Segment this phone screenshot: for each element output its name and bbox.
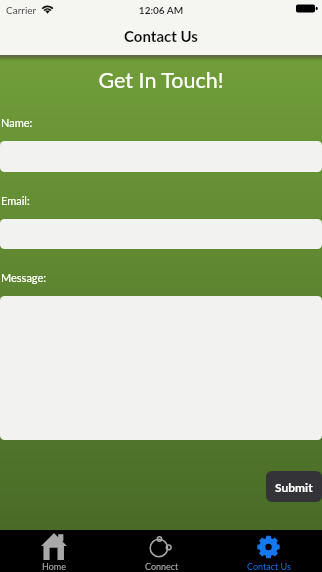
staticText: Connect [145,561,179,572]
staticText: Contact Us [247,561,291,572]
staticText: Name: [1,116,33,129]
staticText: Home [42,561,66,572]
staticText: 12:06 AM [0,4,322,16]
staticText: Carrier [6,4,37,16]
staticText: Email: [1,194,30,207]
button[interactable]: Home [0,530,108,572]
staticText: Submit [275,480,313,494]
button[interactable]: Contact Us [215,530,322,572]
staticText: Message: [1,271,47,284]
button[interactable] [0,141,322,172]
button[interactable]: Submit [266,471,322,502]
button[interactable]: Connect [108,530,215,572]
staticText: Get In Touch! [0,67,322,93]
button[interactable] [0,219,322,249]
staticText: Contact Us [0,27,322,45]
button[interactable] [0,296,322,440]
